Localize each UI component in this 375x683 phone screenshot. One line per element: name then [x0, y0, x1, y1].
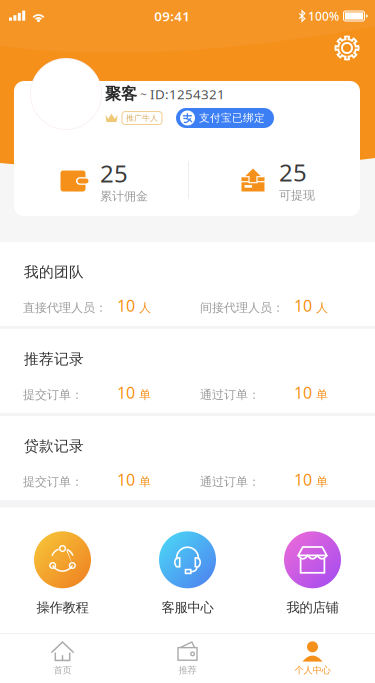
staticText: 人 [139, 300, 151, 315]
staticText: 25 [279, 156, 307, 188]
button[interactable]: 首页 [0, 634, 125, 683]
staticText: 可提现 [279, 188, 315, 203]
staticText: 提交订单： [23, 387, 83, 402]
staticText: 100% [308, 8, 339, 24]
staticText: 间接代理人员： [200, 300, 284, 315]
staticText: 人 [316, 300, 328, 315]
button[interactable]: 客服中心 [125, 525, 250, 621]
staticText: 单 [139, 474, 151, 489]
button[interactable]: 我的店铺 [250, 525, 375, 621]
staticText: 通过订单： [200, 474, 260, 489]
staticText: 10 [294, 382, 312, 403]
staticText: 单 [139, 387, 151, 402]
staticText: 推荐 [178, 664, 196, 676]
staticText: 25 [100, 157, 128, 189]
staticText: 09:41 [154, 7, 190, 25]
staticText: 推广牛人 [126, 113, 158, 123]
staticText: 10 [294, 469, 312, 490]
staticText: 10 [117, 469, 135, 490]
button[interactable]: 个人中心 [250, 634, 375, 683]
staticText: 提交订单： [23, 474, 83, 489]
staticText: 10 [117, 382, 135, 403]
staticText: 个人中心 [294, 664, 330, 676]
staticText: 首页 [53, 664, 71, 676]
staticText: 通过订单： [200, 387, 260, 402]
staticText: 我的店铺 [286, 599, 338, 616]
staticText: 支付宝已绑定 [199, 111, 265, 124]
staticText: 聚客 [105, 84, 137, 104]
button[interactable]: 操作教程 [0, 525, 125, 621]
staticText: 10 [294, 295, 312, 316]
staticText: ~ [137, 86, 150, 102]
staticText: 单 [316, 474, 328, 489]
staticText: 贷款记录 [24, 437, 84, 455]
staticText: ID:1254321 [150, 85, 225, 103]
staticText: 客服中心 [161, 599, 213, 616]
staticText: 推荐记录 [24, 350, 84, 368]
staticText: 10 [117, 295, 135, 316]
button[interactable]: 推荐 [125, 634, 250, 683]
staticText: 累计佣金 [100, 189, 148, 204]
staticText: 直接代理人员： [23, 300, 107, 315]
staticText: 我的团队 [24, 263, 84, 281]
staticText: 单 [316, 387, 328, 402]
button[interactable]: Settings [327, 28, 367, 68]
staticText: 操作教程 [36, 599, 88, 616]
